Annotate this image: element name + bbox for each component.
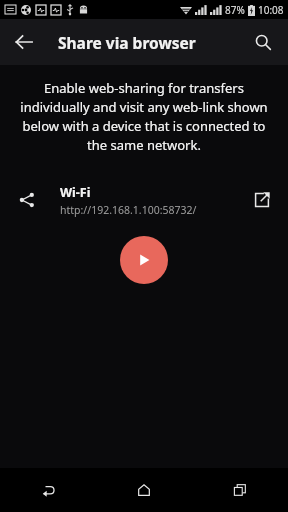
button[interactable]: Start sharing [120,236,168,284]
staticText: Share via browser [58,32,196,53]
staticText: 87% [225,3,245,17]
button[interactable]: Recents [192,468,288,512]
staticText: Enable web-sharing for transfers individ… [14,79,274,154]
button[interactable]: Wi-Fi [0,178,288,222]
button[interactable]: Back [6,24,42,60]
staticText: Wi-Fi [60,184,91,201]
staticText: http://192.168.1.100:58732/ [60,203,197,217]
staticText: 10:08 [258,3,284,17]
button[interactable]: Open in browser [246,184,278,216]
button[interactable]: Home [96,468,192,512]
button[interactable]: Search [246,25,280,59]
button[interactable]: Back [0,468,96,512]
